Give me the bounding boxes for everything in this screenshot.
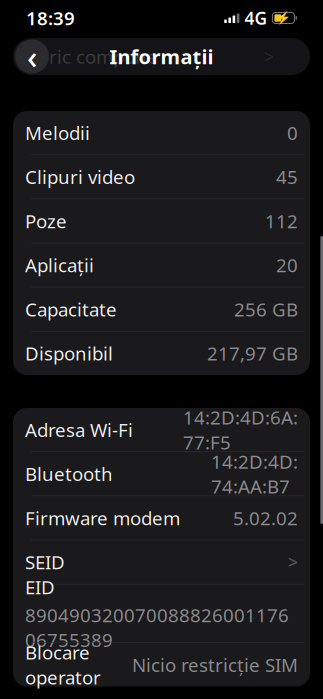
staticText: Bluetooth <box>25 461 113 486</box>
staticText: Capacitate <box>25 297 117 322</box>
staticText: 14:2D:4D:6A:77:F5 <box>183 405 298 455</box>
staticText: SEID <box>25 550 65 574</box>
button[interactable]: Adresa Wi-Fi <box>13 408 310 451</box>
staticText: 18:39 <box>26 6 75 30</box>
staticText: 20 <box>276 253 298 277</box>
staticText: 4G <box>244 6 267 29</box>
staticText: Poze <box>25 209 67 233</box>
staticText: 14:2D:4D:74:AA:B7 <box>211 449 298 499</box>
staticText: Firmware modem <box>25 506 180 530</box>
staticText: Nicio restricție SIM <box>132 652 298 677</box>
staticText: 5.02.02 <box>233 506 298 530</box>
button[interactable]: EID <box>13 584 310 642</box>
staticText: Disponibil <box>25 341 113 366</box>
staticText: Adresa Wi-Fi <box>25 417 133 442</box>
staticText: 217,97 GB <box>207 341 298 366</box>
staticText: 0 <box>287 120 298 145</box>
button[interactable]: Poze <box>13 199 310 243</box>
staticText: EID <box>25 575 55 599</box>
button[interactable]: Disponibil <box>13 331 310 375</box>
staticText: ‹ <box>27 35 37 78</box>
button[interactable]: Blocare operator <box>13 643 310 686</box>
button[interactable]: Clipuri video <box>13 155 310 199</box>
button[interactable]: SEID <box>13 540 310 584</box>
staticText: ⚡ <box>276 11 291 25</box>
button[interactable]: Firmware modem <box>13 496 310 540</box>
staticText: Clipuri video <box>25 164 135 189</box>
staticText: 112 <box>265 209 298 233</box>
button[interactable]: Back <box>15 39 49 73</box>
staticText: Informații <box>109 43 213 70</box>
staticText: 45 <box>276 164 298 189</box>
staticText: Blocare operator <box>25 640 101 690</box>
staticText: Aplicații <box>25 253 94 277</box>
staticText: > <box>264 45 274 68</box>
staticText: 89049032007008882600117606755389 <box>25 602 289 652</box>
staticText: > <box>288 550 298 573</box>
button[interactable]: Aplicații <box>13 243 310 287</box>
staticText: ric compone <box>49 44 158 69</box>
staticText: Melodii <box>25 120 90 145</box>
button[interactable]: Melodii <box>13 111 310 154</box>
staticText: 256 GB <box>234 297 298 322</box>
button[interactable]: Bluetooth <box>13 452 310 496</box>
button[interactable]: Capacitate <box>13 287 310 331</box>
